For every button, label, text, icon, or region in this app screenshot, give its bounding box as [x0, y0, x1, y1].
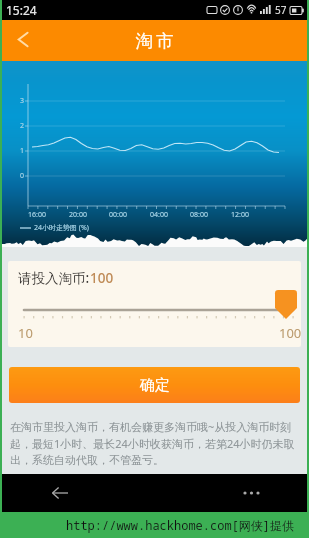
staticText: 3	[20, 96, 25, 106]
staticText: 淘市	[134, 30, 175, 52]
staticText: 12:00	[231, 210, 249, 220]
staticText: 10	[18, 324, 33, 342]
button[interactable]: More options	[235, 476, 269, 510]
staticText: 2	[20, 121, 25, 131]
staticText: 24小时走势图 (%)	[34, 223, 89, 233]
staticText: 100	[90, 269, 114, 287]
staticText: http://www.hackhome.com[网侠]提供	[66, 517, 295, 533]
staticText: 08:00	[190, 210, 208, 220]
staticText: 确定	[140, 376, 170, 395]
staticText: 04:00	[150, 210, 168, 220]
button[interactable]: Back	[2, 20, 43, 61]
staticText: 16:00	[28, 210, 46, 220]
staticText: 1	[20, 146, 25, 156]
staticText: 57	[275, 3, 287, 17]
button[interactable]: Back	[42, 476, 76, 510]
button[interactable]: 确定	[9, 367, 300, 403]
staticText: 0	[20, 171, 25, 181]
staticText: 15:24	[6, 2, 37, 18]
staticText: 100	[279, 324, 301, 342]
staticText: 在淘市里投入淘币，有机会赚更多淘币哦~从投入淘币时刻起，最短1小时、最长24小时…	[10, 419, 299, 467]
staticText: 00:00	[109, 210, 127, 220]
staticText: 请投入淘币:	[18, 269, 90, 287]
staticText: 20:00	[69, 210, 87, 220]
